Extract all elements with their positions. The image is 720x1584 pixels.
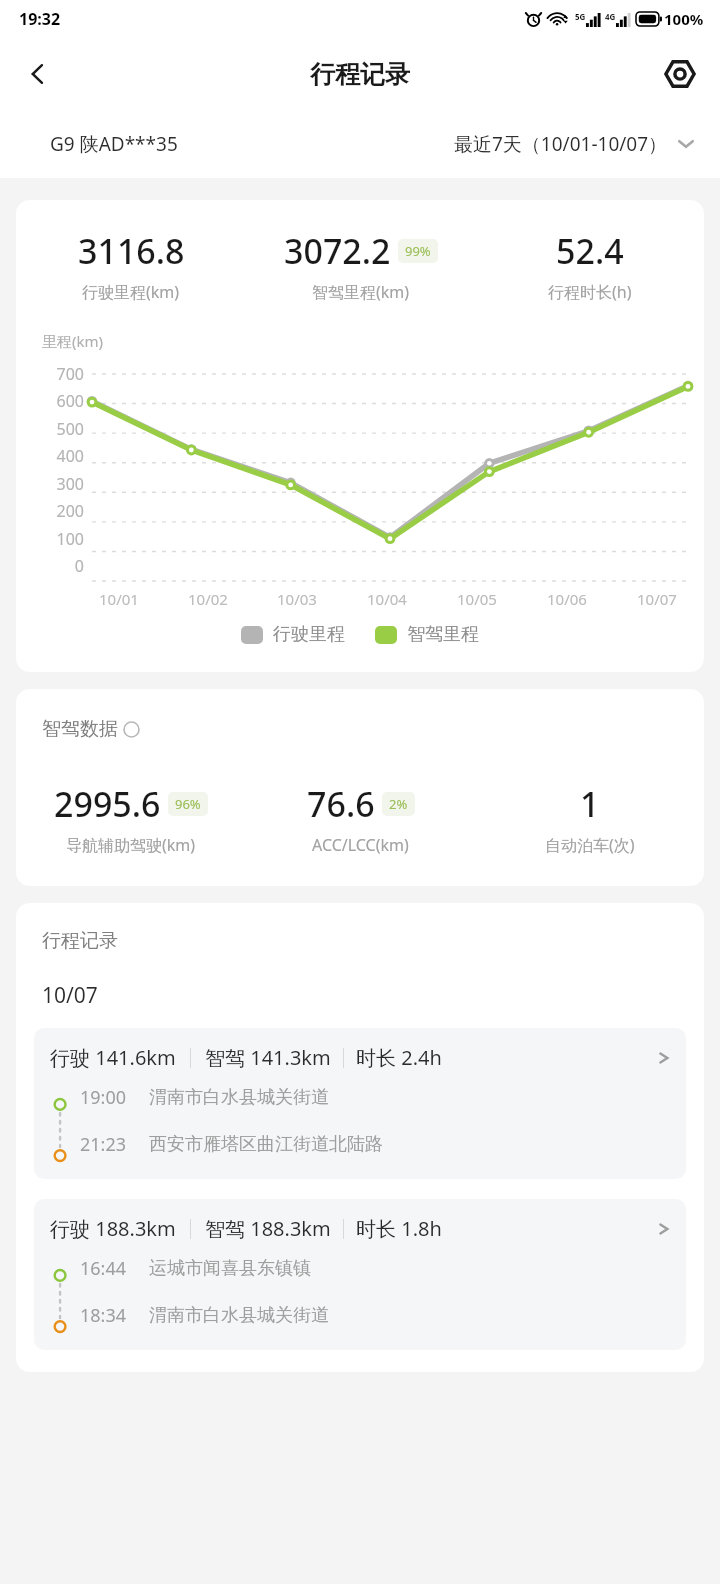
staticText: 里程(km) (42, 331, 104, 351)
button[interactable]: 行驶 188.3km (34, 1199, 686, 1350)
staticText: 智驾数据 (42, 717, 118, 741)
staticText: 导航辅助驾驶(km) (66, 834, 196, 856)
button[interactable]: 最近7天（10/01-10/07） (454, 131, 694, 157)
staticText: 600 (56, 390, 84, 412)
staticText: 渭南市白水县城关街道 (149, 1304, 329, 1327)
staticText: 400 (56, 445, 84, 467)
staticText: 10/05 (457, 589, 497, 609)
staticText: 时长 1.8h (356, 1215, 442, 1242)
staticText: 500 (56, 418, 84, 440)
staticText: 5G (575, 11, 586, 22)
staticText: 4G (605, 11, 616, 22)
staticText: 700 (56, 363, 84, 385)
staticText: 行程记录 (310, 59, 410, 90)
staticText: 运城市闻喜县东镇镇 (149, 1257, 311, 1280)
staticText: 行驶里程 (273, 623, 345, 646)
staticText: 19:32 (19, 8, 61, 30)
staticText: 1 (580, 781, 600, 827)
button[interactable]: Settings (654, 48, 706, 100)
staticText: G9 陕AD***35 (50, 131, 178, 157)
button[interactable]: Back (12, 48, 64, 100)
staticText: 52.4 (556, 228, 624, 274)
staticText: 96% (175, 795, 201, 813)
staticText: 10/07 (42, 981, 98, 1010)
staticText: ACC/LCC(km) (312, 834, 409, 856)
staticText: 2995.6 (54, 781, 161, 827)
staticText: 200 (56, 500, 84, 522)
staticText: 76.6 (307, 781, 375, 827)
staticText: 16:44 (80, 1256, 127, 1281)
staticText: 10/01 (99, 589, 139, 609)
staticText: 19:00 (80, 1085, 127, 1110)
staticText: 0 (74, 555, 84, 577)
staticText: 行驶里程(km) (82, 281, 180, 303)
staticText: 10/02 (188, 589, 228, 609)
staticText: 行程记录 (42, 929, 118, 953)
staticText: 10/06 (547, 589, 587, 609)
staticText: 21:23 (80, 1132, 127, 1157)
staticText: 智驾里程 (407, 623, 479, 646)
button[interactable]: 行驶 141.6km (34, 1028, 686, 1179)
staticText: 智驾里程(km) (312, 281, 410, 303)
staticText: 西安市雁塔区曲江街道北陆路 (149, 1133, 383, 1156)
staticText: 10/03 (277, 589, 317, 609)
staticText: 3072.2 (284, 228, 391, 274)
staticText: 99% (405, 242, 431, 260)
staticText: 10/07 (637, 589, 677, 609)
staticText: 2% (389, 795, 408, 813)
staticText: 最近7天（10/01-10/07） (454, 131, 668, 157)
staticText: 智驾 188.3km (205, 1215, 331, 1242)
staticText: 行驶 141.6km (50, 1044, 176, 1071)
staticText: 行驶 188.3km (50, 1215, 176, 1242)
staticText: 18:34 (80, 1303, 127, 1328)
staticText: 100% (664, 9, 704, 29)
staticText: 3116.8 (78, 228, 185, 274)
button[interactable]: 智驾数据 (42, 717, 140, 741)
staticText: 10/04 (367, 589, 407, 609)
staticText: 100 (56, 528, 84, 550)
staticText: 300 (56, 473, 84, 495)
staticText: 智驾 141.3km (205, 1044, 331, 1071)
staticText: 时长 2.4h (356, 1044, 442, 1071)
staticText: 渭南市白水县城关街道 (149, 1086, 329, 1109)
staticText: 自动泊车(次) (545, 834, 635, 856)
button[interactable]: G9 陕AD***35 (50, 131, 178, 157)
staticText: 行程时长(h) (548, 281, 632, 303)
